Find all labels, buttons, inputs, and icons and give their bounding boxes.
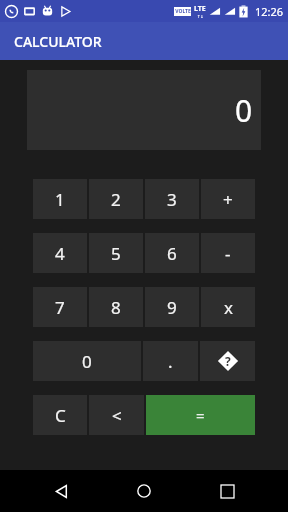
staticText: 9 bbox=[167, 296, 177, 319]
staticText: 4 bbox=[55, 242, 65, 265]
staticText: 12:26 bbox=[255, 4, 284, 19]
button[interactable]: 4 bbox=[33, 233, 87, 273]
staticText: x bbox=[224, 296, 233, 319]
button[interactable]: 2 bbox=[89, 179, 143, 219]
button[interactable]: Back bbox=[39, 470, 83, 512]
staticText: ? bbox=[225, 353, 231, 369]
staticText: 5 bbox=[111, 242, 121, 265]
staticText: . bbox=[168, 350, 173, 373]
staticText: 6 bbox=[167, 242, 177, 265]
button[interactable]: Recent apps bbox=[205, 470, 249, 512]
button[interactable]: < bbox=[89, 395, 144, 435]
staticText: 0 bbox=[235, 90, 253, 131]
button[interactable]: Divide bbox=[200, 341, 255, 381]
staticText: C bbox=[55, 404, 66, 427]
button[interactable]: 3 bbox=[145, 179, 199, 219]
staticText: CALCULATOR bbox=[14, 32, 102, 51]
button[interactable]: 1 bbox=[33, 179, 87, 219]
staticText: 3 bbox=[167, 188, 177, 211]
staticText: 0 bbox=[82, 350, 92, 373]
button[interactable]: 6 bbox=[145, 233, 199, 273]
button[interactable]: 5 bbox=[89, 233, 143, 273]
button[interactable]: - bbox=[201, 233, 255, 273]
staticText: ↑↓ bbox=[197, 14, 204, 19]
button[interactable]: 7 bbox=[33, 287, 87, 327]
staticText: < bbox=[112, 404, 122, 427]
button[interactable]: C bbox=[33, 395, 87, 435]
button[interactable]: . bbox=[143, 341, 198, 381]
button[interactable]: = bbox=[146, 395, 255, 435]
button[interactable]: 9 bbox=[145, 287, 199, 327]
staticText: VOLTE bbox=[175, 8, 191, 15]
staticText: = bbox=[196, 405, 205, 425]
staticText: LTE bbox=[194, 4, 206, 14]
button[interactable]: x bbox=[201, 287, 255, 327]
staticText: + bbox=[223, 188, 233, 211]
staticText: - bbox=[225, 242, 231, 265]
staticText: 1 bbox=[55, 188, 65, 211]
button[interactable]: + bbox=[201, 179, 255, 219]
button[interactable]: 0 bbox=[33, 341, 141, 381]
staticText: 8 bbox=[111, 296, 121, 319]
button[interactable]: 8 bbox=[89, 287, 143, 327]
staticText: 7 bbox=[55, 296, 65, 319]
button[interactable]: Home bbox=[122, 470, 166, 512]
staticText: 2 bbox=[111, 188, 121, 211]
